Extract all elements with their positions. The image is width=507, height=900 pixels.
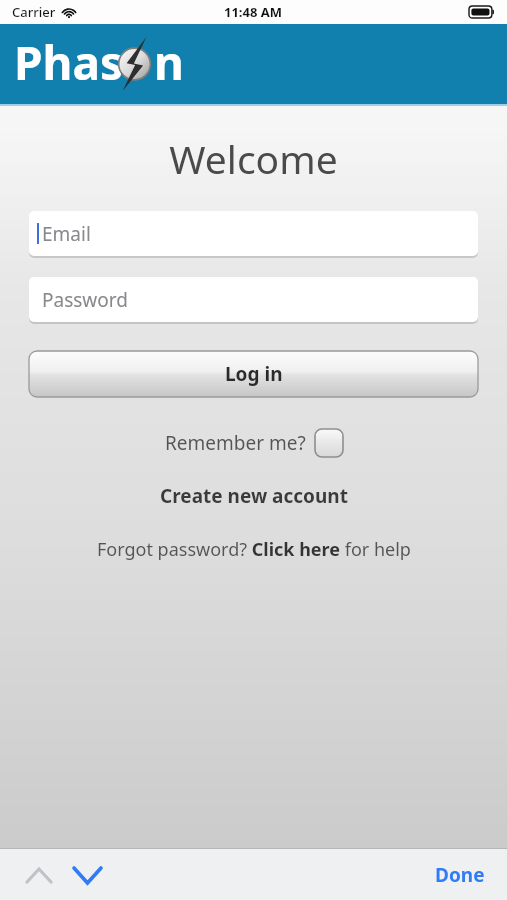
button[interactable]: Previous field (16, 852, 62, 898)
button[interactable]: Done (413, 850, 507, 900)
button[interactable]: Email (29, 211, 478, 256)
staticText: 11:48 AM (224, 3, 283, 21)
staticText: Remember me? (165, 430, 306, 456)
staticText: Forgot password? Click here for help (97, 537, 411, 562)
staticText: Log in (225, 361, 283, 387)
staticText: Create new account (160, 483, 348, 509)
button[interactable]: Forgot password? Click here for help (0, 534, 507, 565)
staticText: Password (42, 287, 128, 313)
button[interactable]: Create new account (0, 480, 507, 512)
button[interactable]: Password (29, 277, 478, 322)
button[interactable]: Next field (64, 852, 110, 898)
button[interactable]: Log in (29, 351, 478, 397)
staticText: Done (435, 862, 485, 888)
staticText: n (154, 31, 184, 94)
staticText: Phas (14, 31, 124, 94)
staticText: Carrier (12, 3, 56, 21)
staticText: Welcome (0, 132, 507, 185)
button[interactable]: Remember me? (165, 427, 343, 459)
staticText: Email (42, 221, 91, 247)
